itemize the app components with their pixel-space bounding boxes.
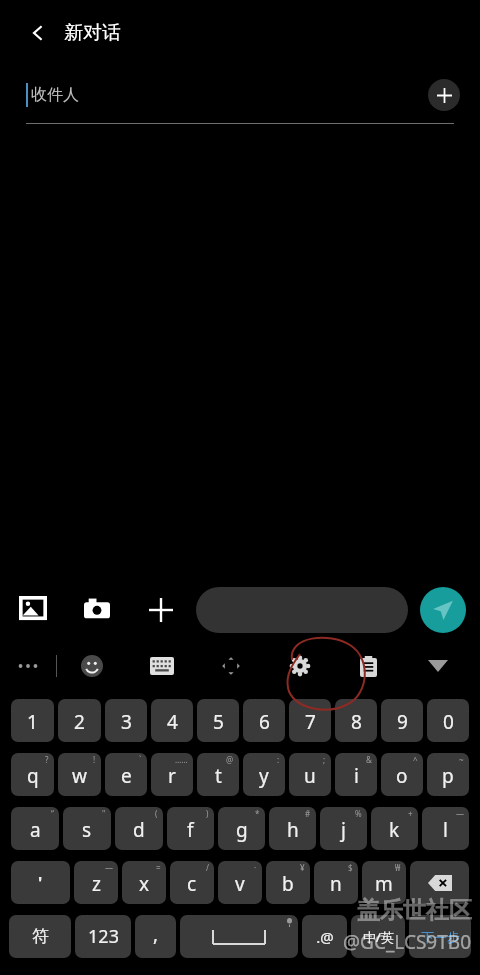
button[interactable]: 3 xyxy=(105,699,147,742)
button[interactable]: ! xyxy=(58,753,101,796)
staticText: u xyxy=(304,763,316,789)
button[interactable]: 0 xyxy=(427,699,469,742)
staticText: , xyxy=(153,921,159,947)
button[interactable]: 123 xyxy=(75,915,131,958)
staticText: z xyxy=(92,871,101,897)
button[interactable]: 5 xyxy=(197,699,239,742)
staticText: b xyxy=(282,871,294,897)
button[interactable]: * xyxy=(218,807,265,850)
button[interactable]: Camera xyxy=(78,591,116,629)
staticText: " xyxy=(102,808,106,819)
button[interactable]: Keyboard layout xyxy=(127,641,196,691)
staticText: .@ xyxy=(316,927,334,947)
button[interactable]: Backspace xyxy=(410,861,469,904)
button[interactable]: .@ xyxy=(302,915,347,958)
staticText: ^ xyxy=(413,754,418,765)
staticText: w xyxy=(72,763,87,789)
staticText: ¥ xyxy=(300,862,305,873)
staticText: ) xyxy=(206,808,209,819)
button[interactable]: % xyxy=(320,807,367,850)
button[interactable]: ' xyxy=(11,861,70,904)
staticText: 1 xyxy=(27,709,38,735)
button[interactable]: ? xyxy=(11,753,54,796)
button[interactable]: Add recipient xyxy=(428,79,460,111)
button[interactable]: ¥ xyxy=(266,861,310,904)
button[interactable]: ^ xyxy=(381,753,423,796)
staticText: — xyxy=(105,862,113,873)
staticText: d xyxy=(133,817,145,843)
button[interactable]: 8 xyxy=(335,699,377,742)
button[interactable]: " xyxy=(63,807,111,850)
button[interactable]: Send xyxy=(420,587,466,633)
button[interactable]: ` xyxy=(105,753,147,796)
button[interactable]: Resize keyboard xyxy=(196,641,265,691)
staticText: 2 xyxy=(74,709,85,735)
button[interactable]: ( xyxy=(115,807,163,850)
staticText: o xyxy=(396,763,408,789)
button[interactable]: 7 xyxy=(289,699,331,742)
button[interactable]: @ xyxy=(197,753,239,796)
button[interactable]: + xyxy=(371,807,418,850)
button[interactable]: ) xyxy=(167,807,214,850)
button[interactable]: Clipboard xyxy=(334,641,403,691)
button[interactable]: Settings xyxy=(265,641,334,691)
button[interactable]: Space xyxy=(180,915,298,958)
button[interactable]: $ xyxy=(314,861,358,904)
button[interactable]: ; xyxy=(289,753,331,796)
button[interactable]: 2 xyxy=(58,699,101,742)
staticText: + xyxy=(408,808,413,819)
button[interactable]: 4 xyxy=(151,699,193,742)
button[interactable]: 6 xyxy=(243,699,285,742)
staticText: ( xyxy=(155,808,158,819)
button[interactable]: # xyxy=(269,807,316,850)
button[interactable]: More xyxy=(0,641,56,691)
staticText: f xyxy=(187,817,194,843)
button[interactable]: 符 xyxy=(9,915,71,958)
staticText: 6 xyxy=(259,709,270,735)
staticText: ~ xyxy=(459,754,464,765)
staticText: & xyxy=(366,754,372,765)
staticText: / xyxy=(206,862,209,873)
staticText: g xyxy=(236,817,248,843)
staticText: * xyxy=(255,808,260,819)
staticText: : xyxy=(277,754,280,765)
staticText: t xyxy=(215,763,222,789)
staticText: 9 xyxy=(397,709,408,735)
button[interactable]: 下一步 xyxy=(409,915,471,958)
button[interactable]: Attach image xyxy=(14,591,52,629)
staticText: q xyxy=(27,763,39,789)
button[interactable]: : xyxy=(243,753,285,796)
staticText: @ xyxy=(226,754,234,765)
staticText: …… xyxy=(175,754,188,765)
staticText: c xyxy=(187,871,197,897)
button[interactable]: — xyxy=(74,861,118,904)
button[interactable]: ~ xyxy=(427,753,469,796)
button[interactable]: 中/英 xyxy=(351,915,405,958)
button[interactable]: & xyxy=(335,753,377,796)
button[interactable]: , xyxy=(135,915,176,958)
button[interactable]: Back xyxy=(22,17,54,49)
button[interactable]: Emoji xyxy=(57,641,127,691)
button[interactable]: More options xyxy=(142,591,180,629)
button[interactable]: “ xyxy=(11,807,59,850)
button[interactable]: 9 xyxy=(381,699,423,742)
button[interactable]: 1 xyxy=(11,699,54,742)
button[interactable]: ₩ xyxy=(362,861,406,904)
button[interactable]: …… xyxy=(151,753,193,796)
staticText: 0 xyxy=(443,709,454,735)
button[interactable]: = xyxy=(122,861,166,904)
staticText: h xyxy=(287,817,299,843)
staticText: ? xyxy=(45,754,49,765)
button[interactable]: — xyxy=(422,807,469,850)
staticText: ; xyxy=(323,754,326,765)
staticText: x xyxy=(139,871,150,897)
button[interactable]: · xyxy=(218,861,262,904)
staticText: e xyxy=(121,763,132,789)
staticText: 4 xyxy=(167,709,178,735)
staticText: j xyxy=(341,817,346,843)
button[interactable]: / xyxy=(170,861,214,904)
button[interactable] xyxy=(196,587,408,633)
staticText: 中/英 xyxy=(363,928,394,946)
button[interactable]: Hide keyboard xyxy=(403,641,472,691)
staticText: 收件人 xyxy=(31,85,79,105)
